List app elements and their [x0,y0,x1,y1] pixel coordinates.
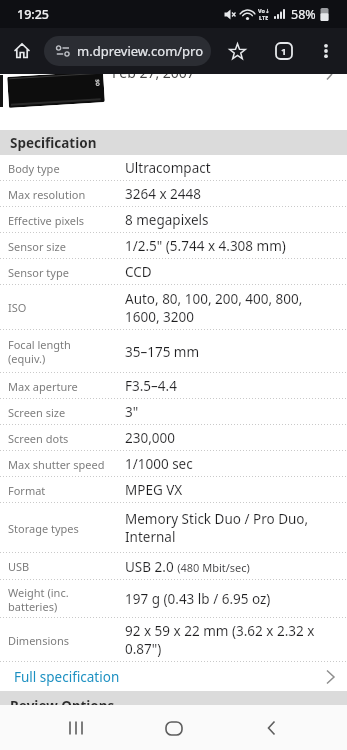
staticText: Auto, 80, 100, 200, 400, 800, 1600, 3200 [125,290,303,326]
staticText: LTE [259,14,269,21]
button[interactable] [304,28,347,74]
staticText: USB [8,559,30,574]
button[interactable] [0,28,44,74]
staticText: m.dpreview.com/pro [77,42,204,60]
staticText: Focal length (equiv.) [8,337,71,366]
staticText: Memory Stick Duo / Pro Duo, Internal [125,510,309,546]
staticText: SO [93,79,101,87]
button[interactable] [211,28,263,74]
button[interactable] [249,706,293,750]
staticText: 197 g (0.43 lb / 6.95 oz) [125,590,271,608]
staticText: Body type [8,161,60,176]
staticText: 58% [291,6,316,23]
staticText: Weight (inc. batteries) [8,585,69,614]
staticText: CCD [125,263,152,281]
staticText: 1/1000 sec [125,455,193,473]
staticText: Review Options [10,697,115,705]
button[interactable]: 1 [263,28,304,74]
staticText: 1/2.5" (5.744 x 4.308 mm) [125,237,286,255]
staticText: Sensor size [8,239,66,254]
staticText: 92 x 59 x 22 mm (3.62 x 2.32 x 0.87") [125,622,315,658]
staticText: Storage types [8,521,79,536]
staticText: Specification [10,134,97,152]
staticText: Max resolution [8,187,86,202]
staticText: Dimensions [8,633,69,648]
staticText: 8 megapixels [125,211,209,229]
staticText: Format [8,483,46,498]
staticText: Max aperture [8,379,78,394]
staticText: 35–175 mm [125,343,200,361]
staticText: 19:25 [17,6,50,23]
staticText: Vo↓ [258,7,270,14]
staticText: Screen size [8,405,66,420]
staticText: 230,000 [125,429,175,447]
staticText: ISO [8,300,27,315]
button[interactable] [152,706,196,750]
staticText: Ultracompact [125,159,211,177]
staticText: 3264 x 2448 [125,185,201,203]
button[interactable]: Full specification [0,662,347,691]
staticText: Full specification [14,668,333,686]
button[interactable] [54,706,98,750]
staticText: Effective pixels [8,213,85,228]
button[interactable]: m.dpreview.com/pro [44,36,211,66]
staticText: MPEG VX [125,481,183,499]
staticText: Feb 27, 2007 [112,74,195,80]
staticText: F3.5–4.4 [125,377,177,395]
staticText: Sensor type [8,265,69,280]
staticText: USB 2.0 (480 Mbit/sec) [125,558,250,576]
staticText: 1 [281,45,287,58]
staticText: 3" [125,403,139,421]
staticText: Max shutter speed [8,457,105,472]
staticText: Screen dots [8,431,69,446]
